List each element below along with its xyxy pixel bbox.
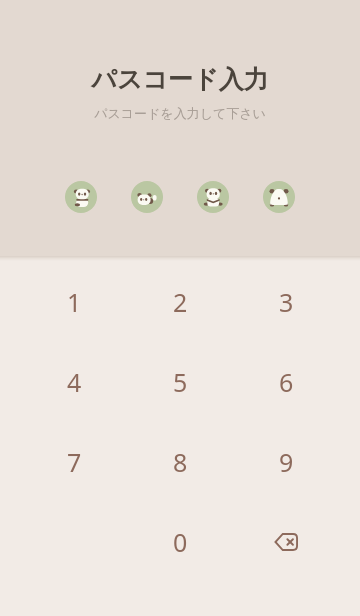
button[interactable]: 0 bbox=[127, 502, 233, 582]
staticText: 4 bbox=[67, 365, 82, 399]
staticText: 5 bbox=[173, 365, 188, 399]
button[interactable]: 5 bbox=[127, 342, 233, 422]
staticText: 3 bbox=[279, 285, 294, 319]
button[interactable]: 7 bbox=[21, 422, 127, 502]
staticText: 7 bbox=[67, 445, 82, 479]
button[interactable]: 3 bbox=[233, 262, 339, 342]
staticText: 9 bbox=[279, 445, 294, 479]
staticText: 6 bbox=[279, 365, 294, 399]
button[interactable]: Delete bbox=[233, 502, 339, 582]
button[interactable]: 2 bbox=[127, 262, 233, 342]
button[interactable]: 4 bbox=[21, 342, 127, 422]
staticText: パスコード入力 bbox=[91, 64, 269, 95]
staticText: パスコードを入力して下さい bbox=[94, 105, 266, 121]
staticText: 8 bbox=[173, 445, 188, 479]
button[interactable]: 1 bbox=[21, 262, 127, 342]
staticText: 2 bbox=[173, 285, 188, 319]
staticText: 0 bbox=[173, 525, 188, 559]
button[interactable]: 9 bbox=[233, 422, 339, 502]
staticText: 1 bbox=[67, 285, 82, 319]
button[interactable]: 6 bbox=[233, 342, 339, 422]
button[interactable]: 8 bbox=[127, 422, 233, 502]
